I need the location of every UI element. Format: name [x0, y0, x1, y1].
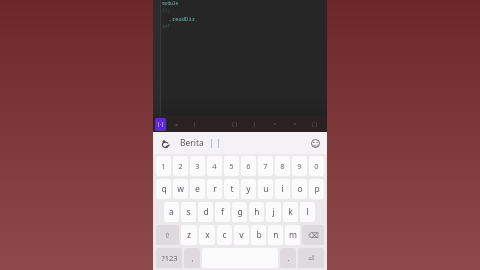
staticText: ⌫	[308, 231, 319, 240]
button[interactable]: Shift	[156, 225, 179, 245]
staticText: h	[254, 206, 260, 218]
staticText: a	[169, 206, 174, 218]
button[interactable]: t	[224, 179, 239, 199]
button[interactable]: Editor key 8	[305, 116, 325, 132]
staticText: Berita	[180, 137, 204, 149]
staticText: });	[162, 7, 171, 13]
staticText: s	[186, 206, 191, 218]
staticText: b	[256, 229, 262, 241]
staticText: z	[187, 229, 191, 241]
button[interactable]: o	[292, 179, 307, 199]
button[interactable]: p	[309, 179, 324, 199]
button[interactable]: k	[283, 202, 298, 222]
button[interactable]: Editor key 1	[166, 116, 185, 132]
staticText: 1	[161, 161, 166, 171]
button[interactable]: e	[190, 179, 205, 199]
button[interactable]: n	[268, 225, 283, 245]
staticText: ⇥	[174, 121, 178, 128]
staticText: l	[306, 206, 309, 218]
staticText: m	[289, 229, 297, 241]
staticText: ⏎	[308, 254, 315, 263]
button[interactable]: Editor key 4	[225, 116, 245, 132]
button[interactable]: Editor key 6	[265, 116, 285, 132]
button[interactable]: Berita	[180, 137, 204, 149]
staticText: ?123	[161, 253, 178, 263]
button[interactable]: z	[181, 225, 197, 245]
staticText: ref	[162, 23, 171, 29]
button[interactable]: 8	[275, 156, 290, 176]
button[interactable]: y	[241, 179, 256, 199]
staticText: q	[161, 183, 167, 195]
button[interactable]: a	[164, 202, 179, 222]
button[interactable]: 0	[309, 156, 324, 176]
button[interactable]: h	[249, 202, 264, 222]
staticText: u	[263, 183, 269, 195]
staticText: 7	[263, 161, 268, 171]
button[interactable]: Voice input	[158, 136, 172, 150]
button[interactable]: u	[258, 179, 273, 199]
staticText: ×	[293, 120, 297, 128]
staticText: ⇧	[164, 231, 171, 240]
button[interactable]: 4	[207, 156, 222, 176]
button[interactable]: 3	[190, 156, 205, 176]
button[interactable]: Editor key 5	[245, 116, 265, 132]
staticText: d	[203, 206, 209, 218]
button[interactable]: Emoji	[308, 136, 322, 150]
button[interactable]: w	[173, 179, 188, 199]
button[interactable]: f	[215, 202, 230, 222]
button[interactable]: b	[251, 225, 266, 245]
button[interactable]: l	[300, 202, 315, 222]
button[interactable]: s	[181, 202, 196, 222]
staticText: y	[246, 183, 251, 195]
staticText: .readDir	[162, 15, 196, 22]
button[interactable]: 2	[173, 156, 188, 176]
button[interactable]: j	[266, 202, 281, 222]
staticText: x	[205, 229, 210, 241]
button[interactable]: d	[198, 202, 213, 222]
staticText: |ᐧ|	[157, 121, 165, 128]
staticText: |	[193, 120, 197, 128]
button[interactable]: i	[275, 179, 290, 199]
staticText: f	[221, 206, 224, 218]
button[interactable]: v	[234, 225, 249, 245]
button[interactable]: Editor key 7	[285, 116, 305, 132]
button[interactable]: 7	[258, 156, 273, 176]
staticText: i	[281, 183, 284, 195]
staticText: 8	[280, 161, 285, 171]
staticText: 5	[229, 161, 234, 171]
staticText: t	[230, 183, 234, 195]
button[interactable]: 1	[156, 156, 171, 176]
button[interactable]: Editor key 2	[185, 116, 205, 132]
button[interactable]: r	[207, 179, 222, 199]
staticText: g	[237, 206, 243, 218]
button[interactable]: 6	[241, 156, 256, 176]
staticText: 4	[212, 161, 217, 171]
button[interactable]: m	[285, 225, 300, 245]
staticText: .	[287, 253, 290, 263]
button[interactable]: Symbols	[156, 248, 182, 268]
staticText: ,	[191, 253, 194, 263]
staticText: 2	[178, 161, 183, 171]
button[interactable]: Period	[280, 248, 296, 268]
staticText: 6	[246, 161, 251, 171]
staticText: module	[162, 0, 179, 6]
button[interactable]: q	[156, 179, 171, 199]
button[interactable]: c	[217, 225, 232, 245]
button[interactable]: x	[199, 225, 215, 245]
staticText: p	[314, 183, 320, 195]
staticText: n	[273, 229, 279, 241]
button[interactable]: 9	[292, 156, 307, 176]
staticText: 0	[314, 161, 319, 171]
staticText: 9	[297, 161, 302, 171]
button[interactable]: g	[232, 202, 247, 222]
button[interactable]: Tab key	[155, 118, 166, 131]
staticText: v	[239, 229, 244, 241]
staticText: {}	[231, 120, 239, 128]
button[interactable]: 5	[224, 156, 239, 176]
button[interactable]: Backspace	[302, 225, 324, 245]
staticText: o	[297, 183, 303, 195]
button[interactable]: Comma	[184, 248, 200, 268]
button[interactable]: Enter	[298, 248, 324, 268]
